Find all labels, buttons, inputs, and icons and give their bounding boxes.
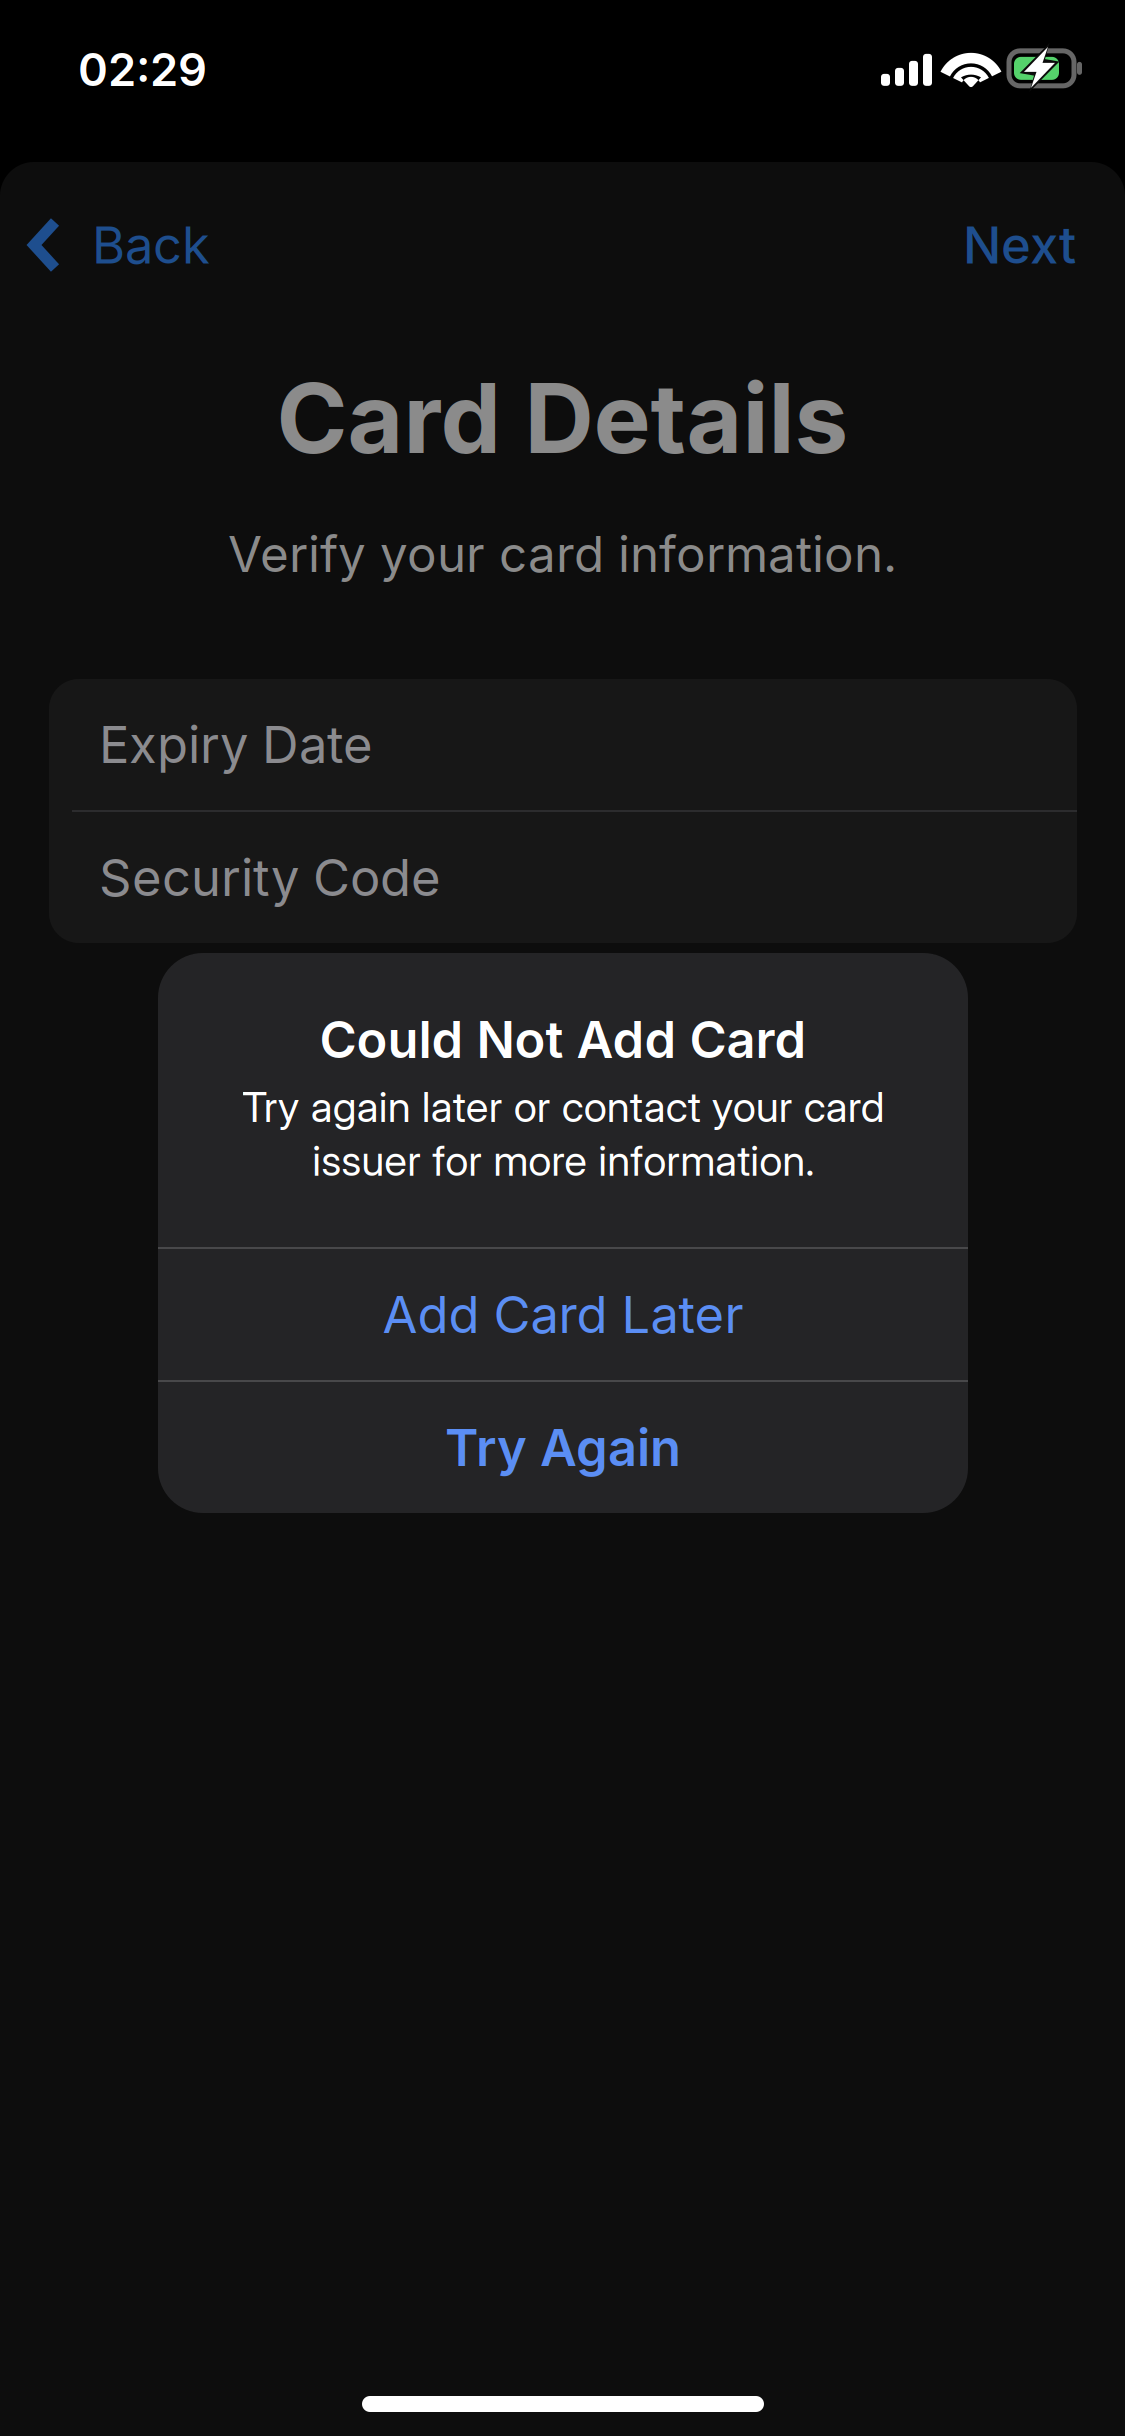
staticText: Expiry Date: [99, 714, 373, 775]
staticText: Could Not Add Card: [319, 1009, 806, 1070]
button[interactable]: Back: [0, 162, 236, 328]
staticText: 02:29: [78, 42, 207, 97]
staticText: Try again later or contact your card iss…: [241, 1081, 884, 1186]
button[interactable]: Add Card Later: [158, 1249, 968, 1380]
staticText: Back: [92, 214, 210, 276]
button[interactable]: Security Code: [49, 812, 1077, 943]
button[interactable]: Next: [937, 162, 1125, 328]
staticText: Add Card Later: [382, 1284, 743, 1345]
staticText: Card Details: [276, 360, 848, 476]
staticText: Security Code: [99, 847, 441, 908]
button[interactable]: Try Again: [158, 1382, 968, 1513]
staticText: Next: [963, 214, 1076, 276]
staticText: Try Again: [445, 1417, 681, 1478]
button[interactable]: Expiry Date: [49, 679, 1077, 810]
staticText: Verify your card information.: [228, 524, 897, 584]
